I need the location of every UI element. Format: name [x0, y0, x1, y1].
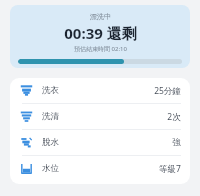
staticText: 脫水	[42, 137, 59, 148]
staticText: 漂洗中	[90, 12, 111, 21]
staticText: 2次	[167, 111, 181, 123]
other: Spin	[20, 136, 33, 149]
button[interactable]: Wash	[10, 78, 190, 103]
staticText: 25分鐘	[154, 85, 181, 97]
staticText: 洗清	[42, 111, 59, 122]
staticText: 洗衣	[42, 85, 59, 96]
staticText: 水位	[42, 163, 59, 174]
button[interactable]: Spin	[10, 130, 190, 155]
staticText: 強	[172, 137, 181, 148]
staticText: 00:39 還剩	[64, 23, 137, 43]
button[interactable]: Rinse	[10, 104, 190, 129]
button[interactable]: Water level	[10, 156, 190, 181]
other: Water level	[20, 162, 33, 175]
staticText: 預估結束時間 02:10	[74, 45, 127, 53]
other: Wash	[20, 84, 33, 97]
button[interactable]: 漂洗中	[10, 5, 190, 68]
other: Rinse	[20, 110, 33, 123]
staticText: 等級7	[159, 163, 181, 175]
